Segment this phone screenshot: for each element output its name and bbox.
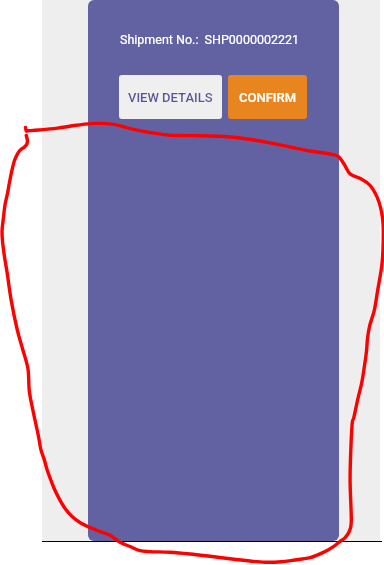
staticText: Shipment No.: SHP0000002221 — [120, 32, 300, 47]
button[interactable]: CONFIRM — [228, 75, 307, 119]
staticText: CONFIRM — [239, 90, 297, 105]
button[interactable]: VIEW DETAILS — [119, 75, 222, 119]
staticText: VIEW DETAILS — [128, 90, 213, 105]
